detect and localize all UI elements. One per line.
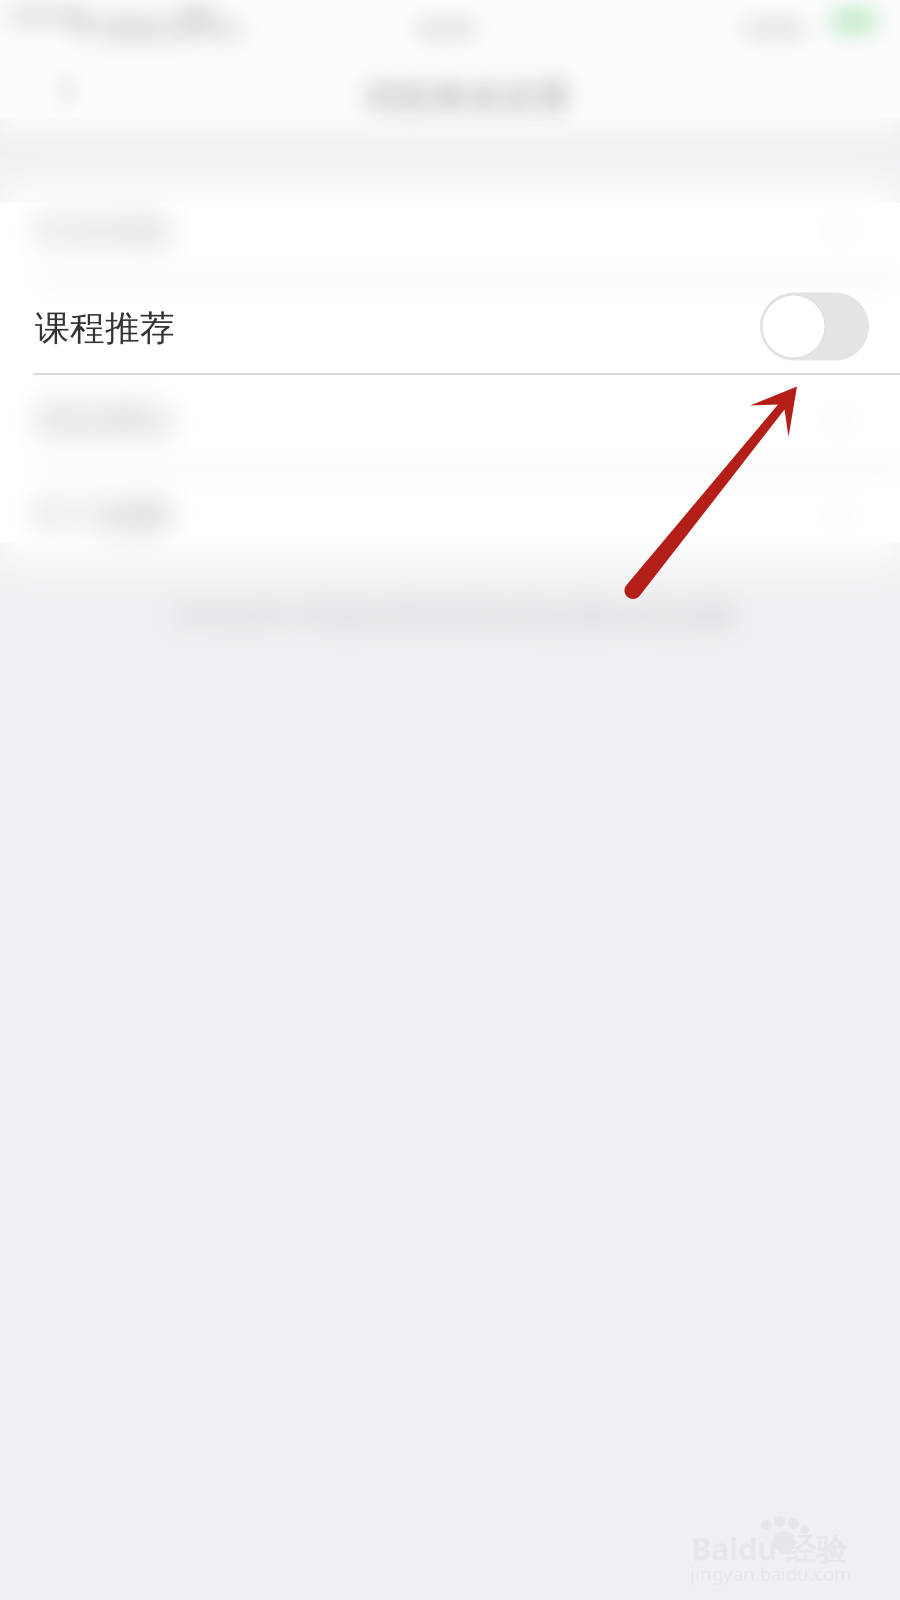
staticText: jingyan.baidu.com — [690, 1561, 851, 1586]
button[interactable]: 学习提醒 — [0, 468, 900, 563]
button[interactable]: 课程推荐 — [0, 278, 900, 373]
button[interactable]: 互动消息 — [0, 183, 900, 278]
button[interactable]: 系统通知 — [0, 373, 900, 468]
staticText: 课程推荐 — [35, 307, 175, 350]
staticText: Baidu 经验 — [691, 1528, 847, 1569]
